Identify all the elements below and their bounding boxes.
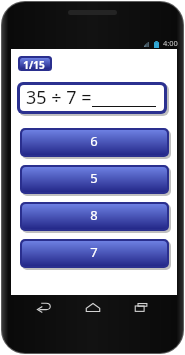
staticText: 5	[90, 169, 98, 187]
button[interactable]: Back	[26, 295, 62, 319]
button[interactable]: Home	[75, 295, 111, 319]
staticText: 6	[90, 132, 98, 150]
staticText: 4:00	[163, 38, 178, 48]
button[interactable]: 1/15	[20, 58, 50, 69]
button[interactable]: 8	[22, 204, 167, 229]
staticText: 35 ÷ 7 =	[26, 85, 92, 110]
button[interactable]: Recent apps	[123, 295, 159, 319]
staticText: 8	[90, 206, 98, 224]
staticText: 1/15	[23, 58, 45, 69]
button[interactable]: 35 ÷ 7 =	[20, 85, 164, 111]
staticText: 7	[90, 243, 98, 261]
button[interactable]: 7	[22, 241, 167, 266]
button[interactable]: 5	[22, 167, 167, 192]
button[interactable]: 6	[22, 130, 167, 155]
